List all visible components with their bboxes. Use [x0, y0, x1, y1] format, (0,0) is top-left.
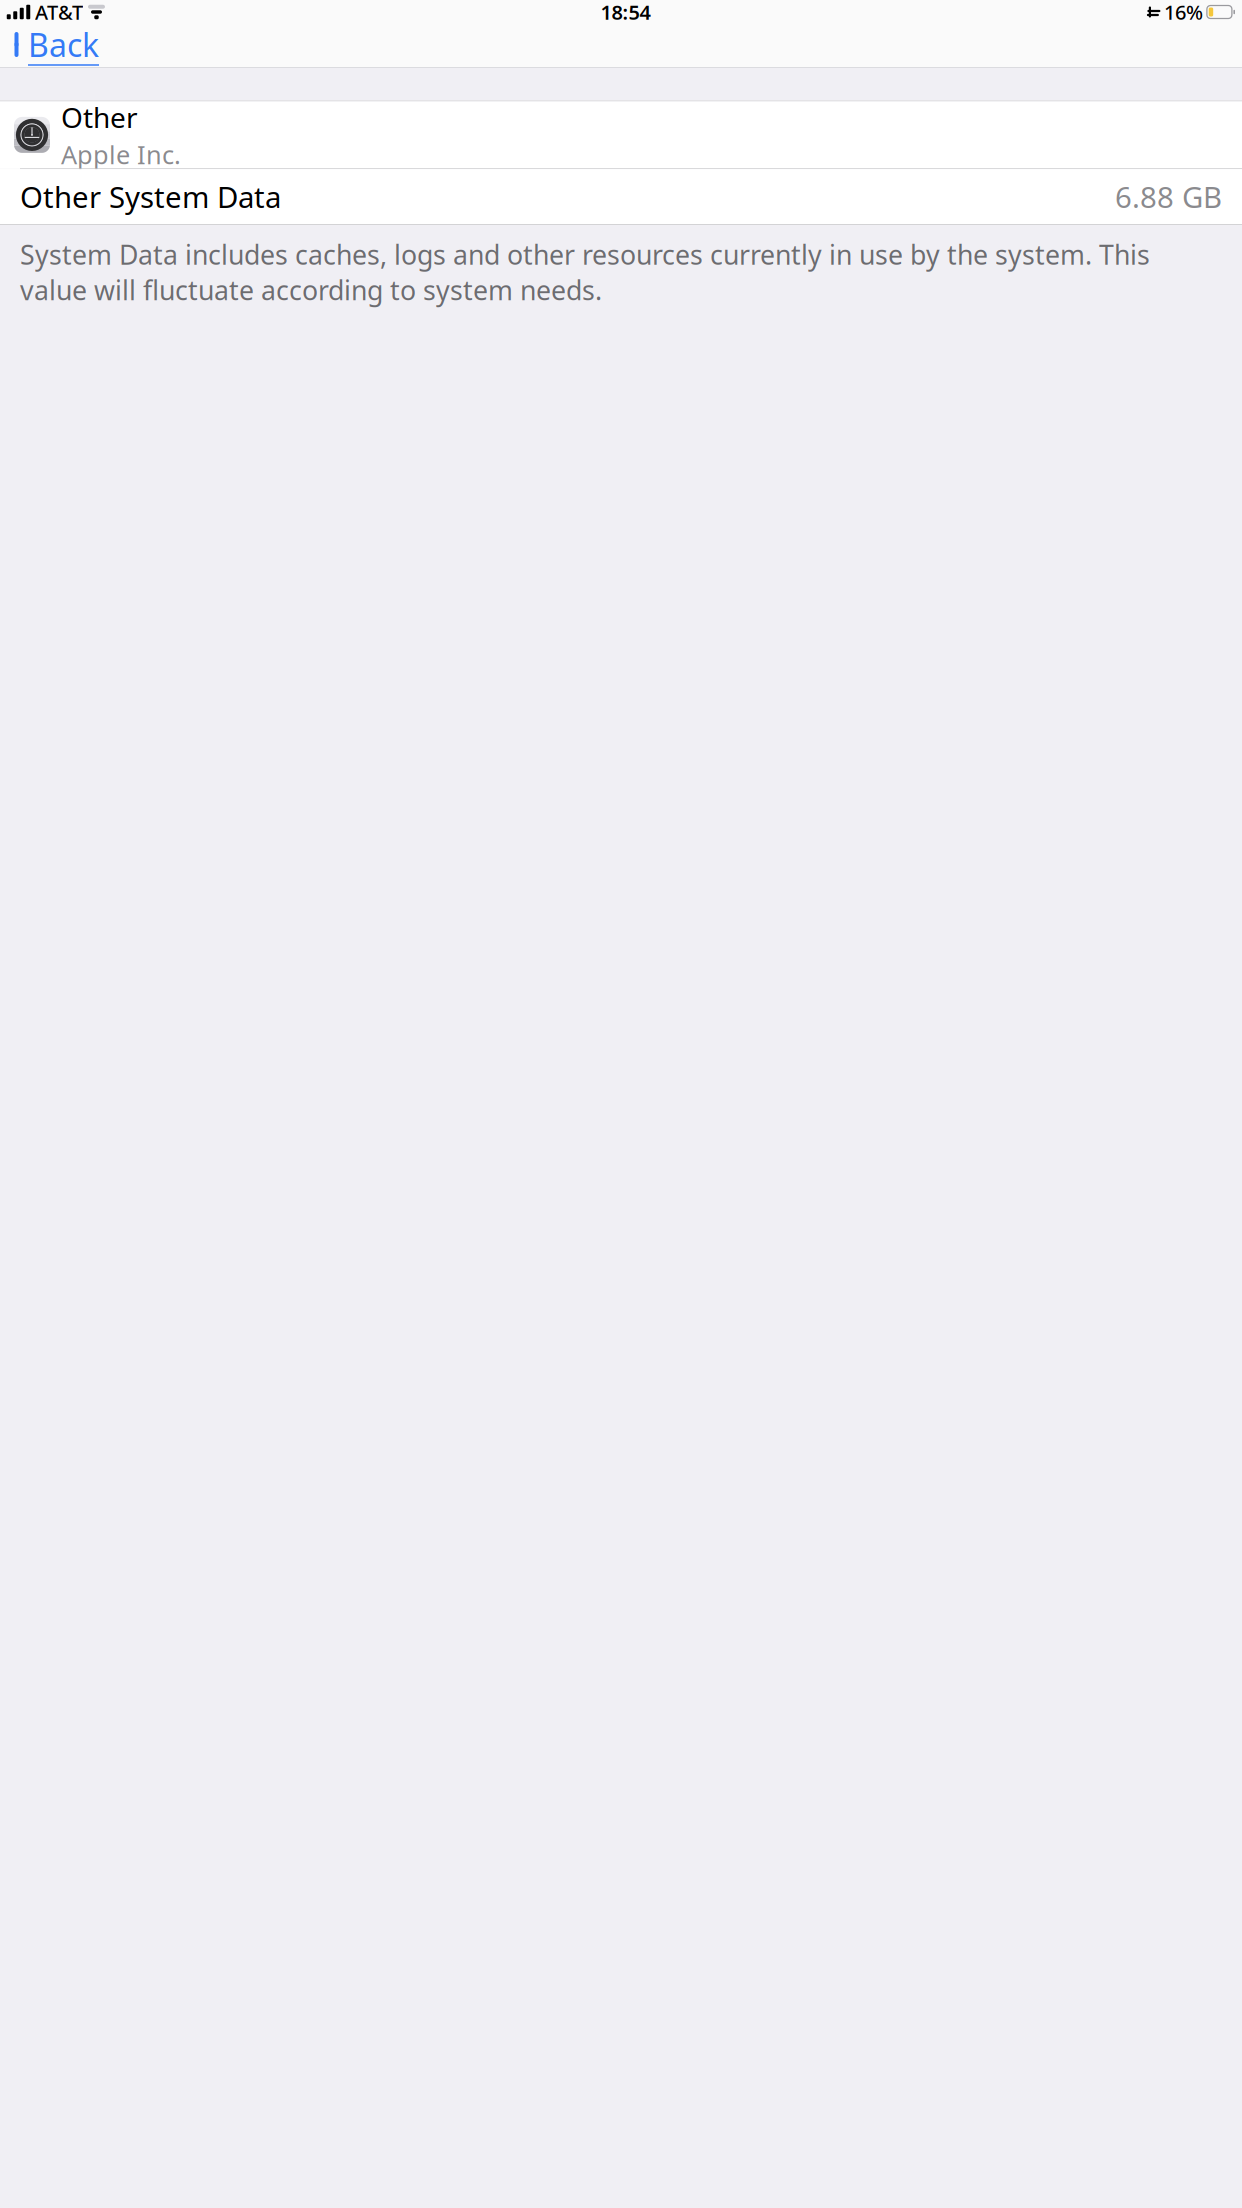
staticText: 16% [1164, 0, 1203, 25]
button[interactable]: Back [0, 18, 111, 71]
staticText: AT&T [35, 0, 83, 25]
staticText: Other System Data [20, 177, 281, 216]
staticText: 18:54 [600, 0, 650, 25]
staticText: 6.88 GB [1115, 177, 1222, 216]
staticText: Apple Inc. [61, 138, 181, 171]
staticText: System Data includes caches, logs and ot… [20, 237, 1150, 308]
staticText: Other [61, 98, 138, 136]
staticText: Back [28, 23, 99, 66]
